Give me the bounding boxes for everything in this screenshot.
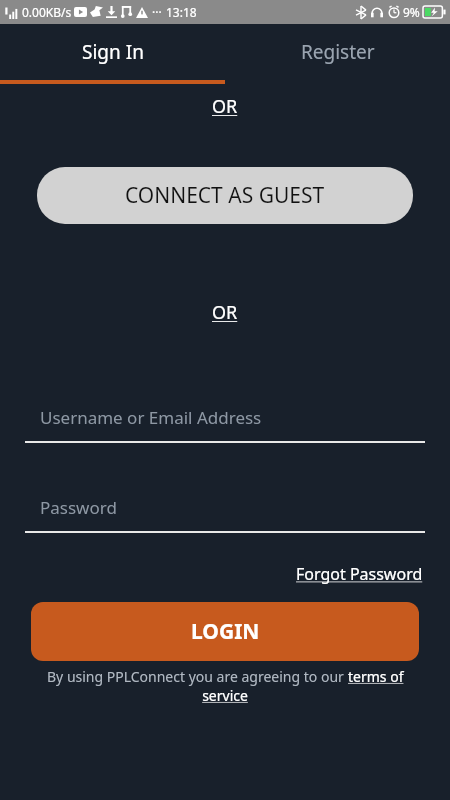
- staticText: 9%: [403, 4, 420, 20]
- staticText: 0.00KB/s: [22, 4, 72, 20]
- staticText: By using PPLConnect you are agreeing to …: [47, 667, 348, 686]
- staticText: service: [202, 686, 248, 705]
- button[interactable]: Password: [25, 491, 425, 533]
- staticText: Register: [301, 39, 375, 65]
- staticText: LOGIN: [191, 617, 260, 646]
- button[interactable]: Sign In: [0, 24, 225, 80]
- button[interactable]: Forgot Password: [296, 563, 423, 585]
- button[interactable]: LOGIN: [31, 602, 419, 661]
- staticText: 13:18: [166, 4, 197, 20]
- button[interactable]: Register: [225, 24, 450, 80]
- button[interactable]: Username or Email Address: [25, 401, 425, 443]
- staticText: ···: [152, 4, 162, 20]
- staticText: Password: [40, 496, 117, 519]
- staticText: OR: [212, 94, 238, 119]
- button[interactable]: CONNECT AS GUEST: [37, 167, 413, 224]
- button[interactable]: By using PPLConnect you are agreeing to …: [20, 667, 430, 705]
- staticText: Username or Email Address: [40, 406, 262, 429]
- staticText: Sign In: [82, 39, 144, 65]
- staticText: CONNECT AS GUEST: [125, 181, 325, 210]
- staticText: OR: [212, 300, 238, 325]
- staticText: terms of: [348, 667, 404, 686]
- staticText: Forgot Password: [296, 563, 423, 585]
